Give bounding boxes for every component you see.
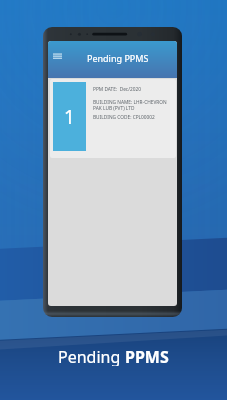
staticText: BUILDING NAME: LHR-CHEVRON PAK LUB (PVT)… [93, 99, 167, 111]
button[interactable]: 1 [50, 79, 176, 158]
staticText: PPM DATE: Dec/2020 [93, 86, 141, 93]
staticText: 1 [64, 104, 75, 130]
staticText: Pending PPMS [87, 52, 149, 64]
staticText: BUILDING CODE: CPL00002 [93, 114, 155, 121]
staticText: PPMS [125, 346, 169, 366]
staticText: Pending [58, 346, 125, 366]
button[interactable]: Open navigation drawer [49, 48, 65, 64]
